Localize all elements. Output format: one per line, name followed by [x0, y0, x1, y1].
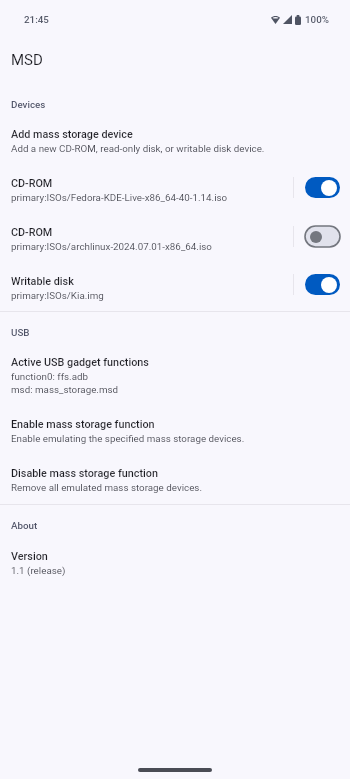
staticText: Add mass storage device: [11, 128, 133, 141]
staticText: 100%: [305, 14, 329, 25]
staticText: CD-ROM: [11, 226, 53, 239]
button[interactable]: Active USB gadget functions: [0, 344, 350, 406]
staticText: 1.1 (release): [11, 565, 66, 576]
staticText: 21:45: [24, 14, 49, 25]
staticText: primary:ISOs/Fedora-KDE-Live-x86_64-40-1…: [11, 192, 228, 203]
staticText: Writable disk: [11, 275, 74, 288]
staticText: Version: [11, 550, 48, 563]
staticText: About: [11, 520, 38, 531]
button[interactable]: Version: [0, 538, 350, 587]
button[interactable]: Toggle CD-ROM: [305, 177, 340, 198]
button[interactable]: Disable mass storage function: [0, 455, 350, 504]
button[interactable]: Toggle Writable disk: [305, 274, 340, 295]
button[interactable]: Toggle CD-ROM: [305, 226, 340, 247]
staticText: primary:ISOs/archlinux-2024.07.01-x86_64…: [11, 241, 212, 252]
staticText: primary:ISOs/Kia.img: [11, 290, 104, 301]
staticText: MSD: [11, 51, 43, 69]
staticText: Disable mass storage function: [11, 467, 158, 480]
staticText: msd: mass_storage.msd: [11, 384, 119, 395]
staticText: Enable emulating the specified mass stor…: [11, 433, 245, 444]
staticText: Active USB gadget functions: [11, 356, 149, 369]
button[interactable]: Add mass storage device: [0, 116, 350, 165]
staticText: USB: [11, 327, 30, 338]
staticText: function0: ffs.adb: [11, 371, 89, 382]
button[interactable]: Writable disk: [0, 263, 350, 311]
button[interactable]: Enable mass storage function: [0, 406, 350, 455]
button[interactable]: CD-ROM: [0, 165, 350, 214]
staticText: Add a new CD-ROM, read-only disk, or wri…: [11, 143, 265, 154]
staticText: Devices: [11, 99, 46, 110]
button[interactable]: CD-ROM: [0, 214, 350, 263]
staticText: CD-ROM: [11, 177, 53, 190]
staticText: Remove all emulated mass storage devices…: [11, 482, 202, 493]
staticText: Enable mass storage function: [11, 418, 155, 431]
